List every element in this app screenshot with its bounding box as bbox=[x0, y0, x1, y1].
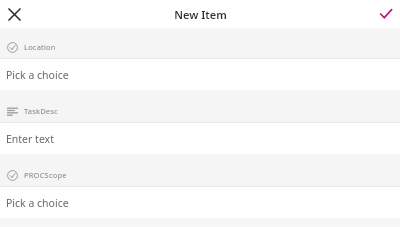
button[interactable]: Enter text bbox=[0, 123, 400, 154]
button[interactable]: Close bbox=[0, 0, 28, 28]
button[interactable]: Save bbox=[372, 0, 400, 28]
staticText: PROCScope bbox=[24, 170, 67, 180]
button[interactable]: Pick a choice bbox=[0, 187, 400, 218]
staticText: Pick a choice bbox=[6, 68, 69, 82]
staticText: Enter text bbox=[6, 132, 54, 146]
staticText: TaskDesc bbox=[24, 106, 58, 116]
staticText: Location bbox=[24, 42, 56, 52]
button[interactable]: Pick a choice bbox=[0, 59, 400, 90]
staticText: New Item bbox=[174, 7, 227, 22]
staticText: Pick a choice bbox=[6, 196, 69, 210]
